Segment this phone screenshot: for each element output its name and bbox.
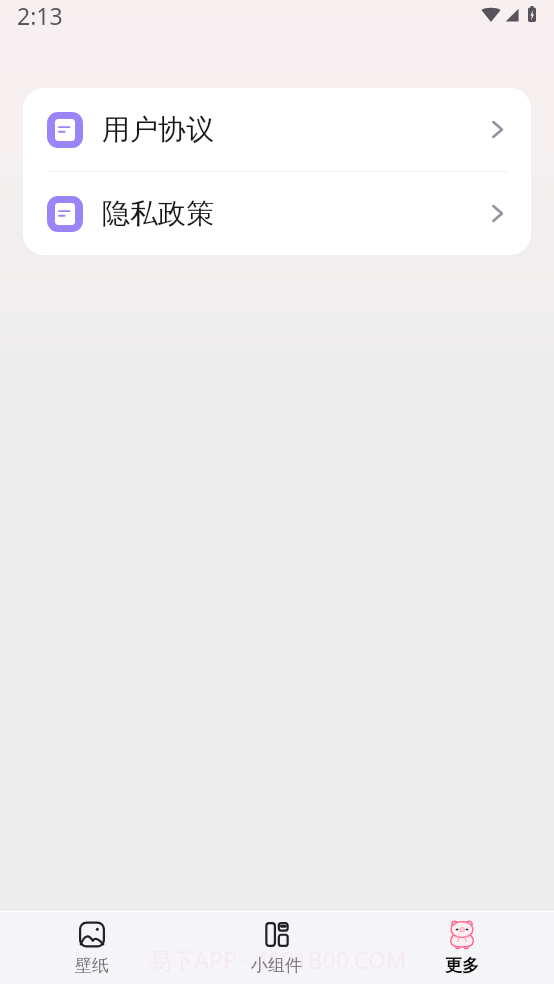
staticText: 更多 — [445, 955, 479, 976]
staticText: 小组件 — [251, 955, 302, 976]
button[interactable]: 小组件 — [184, 912, 369, 976]
other: More — [492, 121, 503, 138]
staticText: 隐私政策 — [102, 196, 214, 231]
staticText: 壁纸 — [75, 955, 109, 976]
staticText: 2:13 — [17, 0, 63, 31]
button[interactable]: 更多 — [369, 912, 554, 976]
staticText: 用户协议 — [102, 112, 214, 147]
button[interactable]: 壁纸 — [0, 912, 184, 976]
button[interactable]: 用户协议 — [23, 88, 531, 171]
button[interactable]: 隐私政策 — [23, 172, 531, 255]
staticText: 易下APP · 4991B00.COM — [148, 944, 407, 975]
other: More — [492, 205, 503, 222]
